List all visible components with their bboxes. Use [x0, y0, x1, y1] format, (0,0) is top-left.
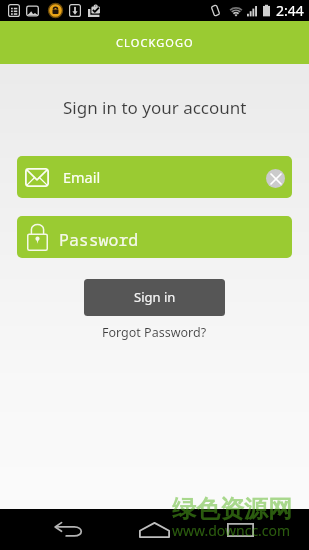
- staticText: Sign in to your account: [63, 96, 247, 119]
- staticText: Forgot Password?: [102, 324, 207, 341]
- staticText: Email: [63, 167, 101, 187]
- staticText: Sign in: [134, 288, 176, 306]
- button[interactable]: Back: [40, 509, 96, 550]
- button[interactable]: Email: [17, 156, 292, 198]
- button[interactable]: Recents: [212, 509, 268, 550]
- button[interactable]: Clear email: [266, 169, 285, 188]
- staticText: Password: [59, 228, 139, 250]
- button[interactable]: Home: [126, 509, 182, 550]
- staticText: 绿色资源网: [172, 494, 292, 524]
- button[interactable]: Forgot Password?: [96, 322, 213, 343]
- staticText: 2:44: [276, 1, 304, 20]
- staticText: CLOCKGOGO: [116, 35, 194, 50]
- button[interactable]: Password: [17, 216, 292, 258]
- button[interactable]: Sign in: [84, 279, 225, 316]
- staticText: www.downcc.com: [172, 521, 291, 540]
